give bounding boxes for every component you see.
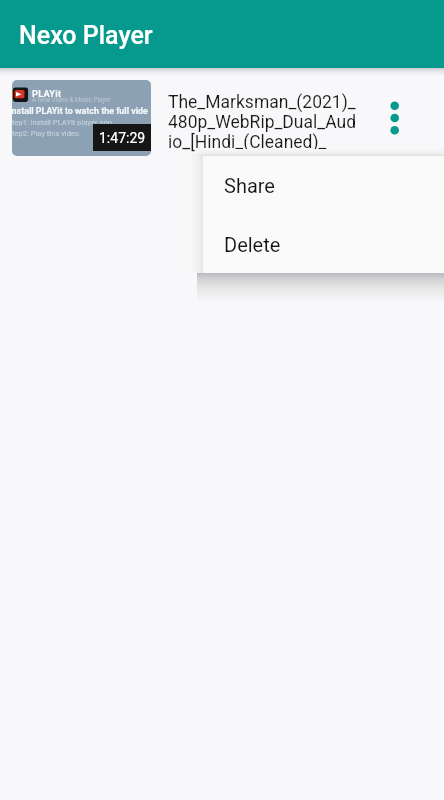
staticText: step1: install PLAYit player app [12,118,113,127]
staticText: 1:47:29 [99,130,146,146]
button[interactable]: More options [374,68,416,168]
staticText: PLAYit [32,88,62,99]
staticText: Delete [224,233,281,256]
staticText: Nexo Player [19,21,153,50]
button[interactable]: PLAYit [0,68,444,168]
button[interactable]: Delete [203,215,444,273]
staticText: step2: Play this video [12,129,80,138]
staticText: The_Marksman_(2021)_ 480p_WebRip_Dual_Au… [168,92,368,152]
staticText: A New Video & Music Player [32,96,111,103]
staticText: Install PLAYit to watch the full video [12,106,148,116]
button[interactable]: Share [203,156,444,215]
staticText: Share [224,174,275,197]
